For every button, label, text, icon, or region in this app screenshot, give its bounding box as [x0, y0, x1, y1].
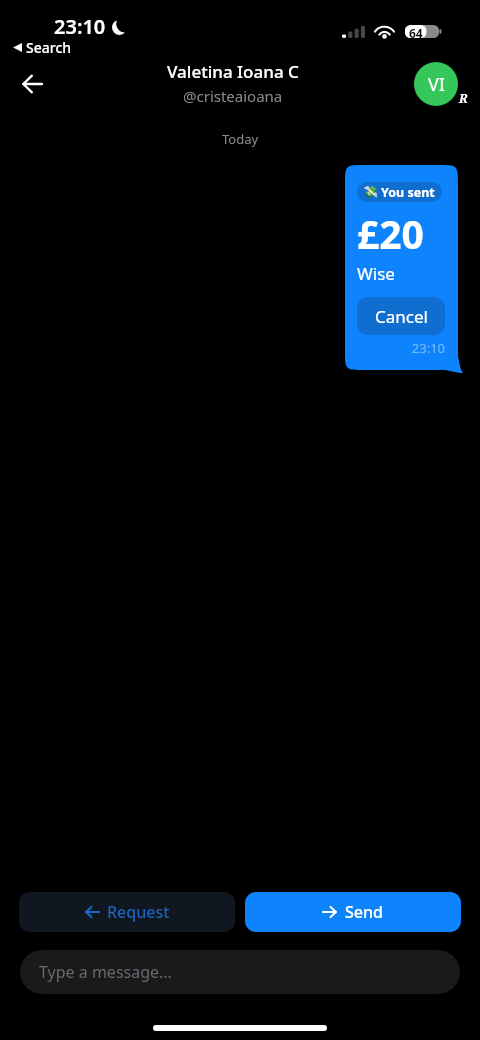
- staticText: 23:10: [357, 339, 445, 357]
- staticText: @cristeaioana: [183, 86, 283, 106]
- staticText: 64: [409, 25, 423, 38]
- staticText: R: [459, 90, 468, 106]
- staticText: You sent: [381, 184, 435, 201]
- staticText: Type a message...: [39, 961, 172, 983]
- button[interactable]: Send: [245, 892, 461, 932]
- staticText: 23:10: [54, 13, 106, 40]
- staticText: Search: [26, 38, 72, 57]
- staticText: Send: [345, 901, 383, 923]
- staticText: VI: [428, 72, 445, 97]
- staticText: £20: [357, 207, 424, 260]
- staticText: Cancel: [375, 305, 428, 328]
- staticText: Today: [0, 130, 480, 148]
- button[interactable]: Type a message...: [20, 950, 460, 994]
- button[interactable]: Profile: [414, 62, 458, 106]
- button[interactable]: Back: [9, 61, 55, 107]
- staticText: Request: [107, 901, 170, 923]
- staticText: Wise: [357, 262, 395, 285]
- staticText: 💸: [363, 185, 378, 199]
- button[interactable]: Request: [19, 892, 235, 932]
- button[interactable]: Cancel: [357, 297, 445, 335]
- staticText: Valetina Ioana C: [167, 60, 299, 83]
